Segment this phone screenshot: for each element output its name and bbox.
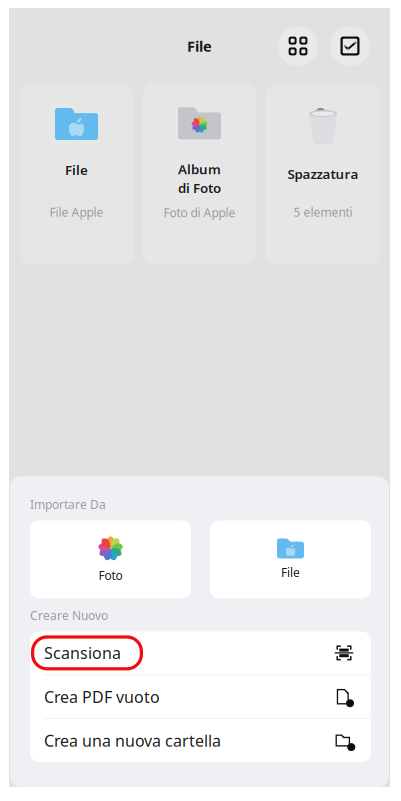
button[interactable]: Foto — [30, 520, 191, 598]
button[interactable]: Crea PDF vuoto — [30, 675, 371, 718]
button[interactable]: Select — [330, 26, 370, 66]
button[interactable]: Icon view — [278, 26, 318, 66]
staticText: 5 elementi — [293, 204, 352, 220]
staticText: Spazzatura — [287, 165, 358, 183]
staticText: Foto di Apple — [163, 205, 235, 221]
staticText: di Foto — [178, 179, 221, 197]
staticText: Album — [178, 160, 221, 178]
button[interactable]: Scansiona — [30, 631, 371, 674]
staticText: File — [281, 564, 300, 580]
staticText: File Apple — [49, 204, 103, 220]
staticText: File — [187, 36, 212, 56]
staticText: Creare Nuovo — [30, 607, 108, 623]
button[interactable]: File — [20, 83, 133, 265]
button[interactable]: Crea una nuova cartella — [30, 719, 371, 762]
staticText: Crea una nuova cartella — [44, 730, 221, 751]
staticText: Crea PDF vuoto — [44, 686, 160, 707]
button[interactable]: Album — [143, 83, 256, 265]
staticText: Importare Da — [30, 496, 106, 512]
button[interactable]: Spazzatura — [266, 83, 380, 265]
staticText: Scansiona — [44, 642, 121, 663]
staticText: File — [65, 161, 88, 179]
staticText: Foto — [98, 567, 122, 583]
button[interactable]: File — [210, 520, 371, 598]
